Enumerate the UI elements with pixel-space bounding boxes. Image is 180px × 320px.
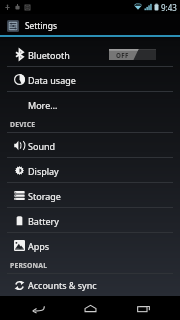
staticText: Sound [28,140,56,152]
button[interactable]: Apps [0,233,180,258]
button[interactable]: Accounts & sync [0,274,180,296]
staticText: Display [28,165,59,177]
staticText: Bluetooth [28,49,70,61]
staticText: OFF [116,51,129,59]
button[interactable]: More… [0,92,180,117]
button[interactable]: Battery [0,208,180,233]
staticText: More… [28,99,58,111]
button[interactable]: Display [0,158,180,183]
staticText: DEVICE [10,120,36,129]
button[interactable]: Home [75,296,105,320]
staticText: Battery [28,215,59,227]
button[interactable]: Recent apps [128,296,158,320]
button[interactable]: Sound [0,133,180,158]
button[interactable]: Bluetooth [0,42,180,67]
button[interactable]: Bluetooth toggle [109,49,156,60]
staticText: Apps [28,240,50,252]
staticText: Settings [25,20,57,31]
staticText: Storage [28,190,61,202]
staticText: Data usage [28,74,76,86]
button[interactable]: Data usage [0,67,180,92]
staticText: Accounts & sync [28,279,97,291]
staticText: PERSONAL [10,261,48,270]
button[interactable]: Back [23,296,53,320]
button[interactable]: Storage [0,183,180,208]
staticText: 9:43 [161,2,177,13]
